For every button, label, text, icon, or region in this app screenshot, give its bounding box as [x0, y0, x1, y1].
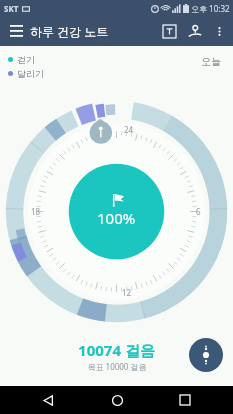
staticText: 하루 건강 노트	[30, 23, 109, 39]
button[interactable]: Back	[36, 388, 60, 412]
button[interactable]: Home	[105, 388, 129, 412]
staticText: 18	[31, 206, 41, 217]
button[interactable]: Location	[182, 18, 208, 44]
staticText: 24	[124, 124, 134, 135]
button[interactable]: Recents	[173, 388, 197, 412]
staticText: 목표 10000 걸음	[87, 361, 147, 372]
button[interactable]: Menu	[4, 19, 28, 43]
staticText: 10074 걸음	[78, 340, 155, 360]
staticText: 오후 10:32	[191, 3, 230, 14]
button[interactable]: More options	[208, 20, 230, 42]
staticText: 12	[122, 287, 132, 298]
staticText: 6	[196, 206, 201, 217]
staticText: 달리기	[17, 68, 44, 79]
staticText: 오늘	[201, 55, 221, 68]
staticText: 걷기	[17, 54, 35, 65]
button[interactable]: Calendar	[156, 18, 182, 44]
staticText: 100%	[97, 208, 136, 228]
button[interactable]: Add entry	[189, 338, 223, 372]
staticText: SKT	[4, 3, 19, 14]
button[interactable]: 오늘	[197, 54, 225, 69]
